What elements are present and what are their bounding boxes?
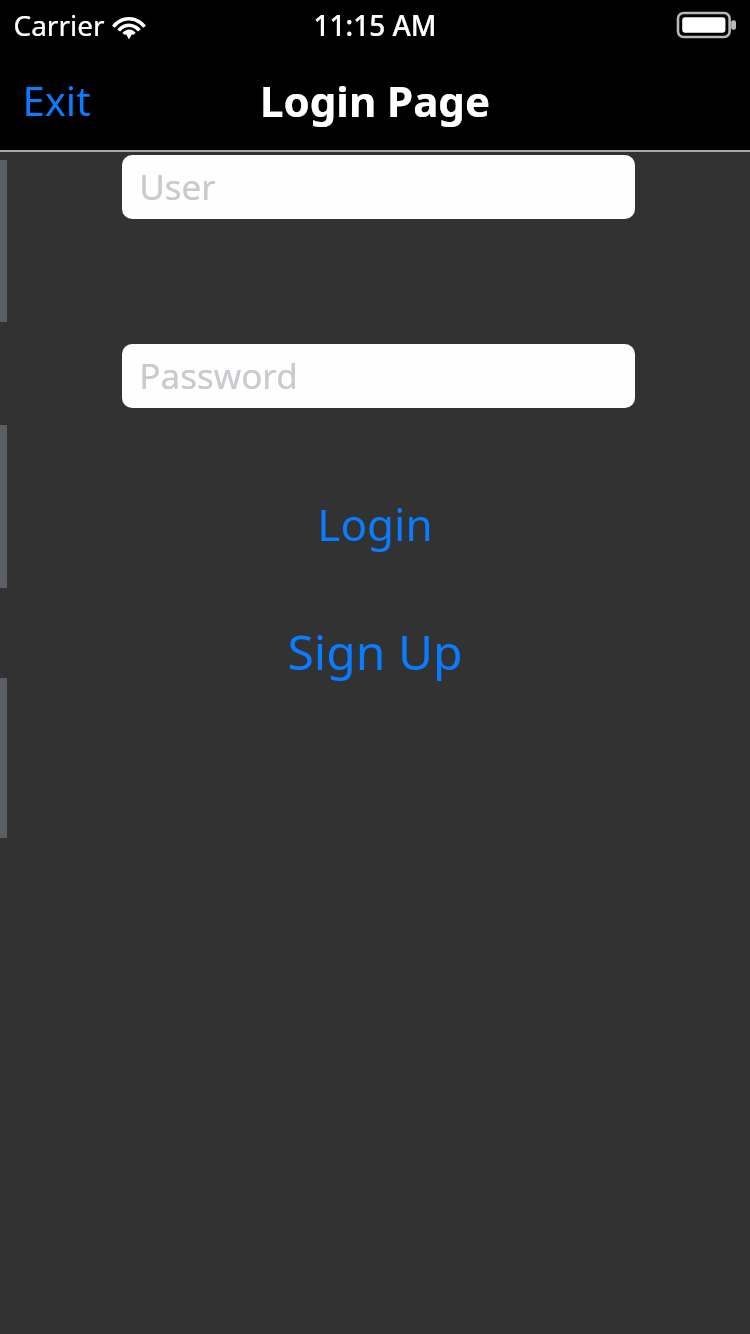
staticText: User xyxy=(139,163,216,211)
staticText: Carrier xyxy=(13,6,105,44)
staticText: Exit xyxy=(22,73,91,127)
button[interactable]: Sign Up xyxy=(0,616,750,686)
staticText: Login xyxy=(317,494,433,554)
button[interactable]: Login xyxy=(0,492,750,556)
staticText: Sign Up xyxy=(287,619,463,684)
other: Wi-Fi signal xyxy=(110,12,148,40)
staticText: Password xyxy=(139,352,298,400)
staticText: Login Page xyxy=(260,72,490,129)
button[interactable]: User xyxy=(122,155,635,219)
button[interactable]: Password xyxy=(122,344,635,408)
other: Battery full xyxy=(678,13,736,37)
button[interactable]: Exit xyxy=(8,50,104,150)
staticText: 11:15 AM xyxy=(313,6,437,44)
